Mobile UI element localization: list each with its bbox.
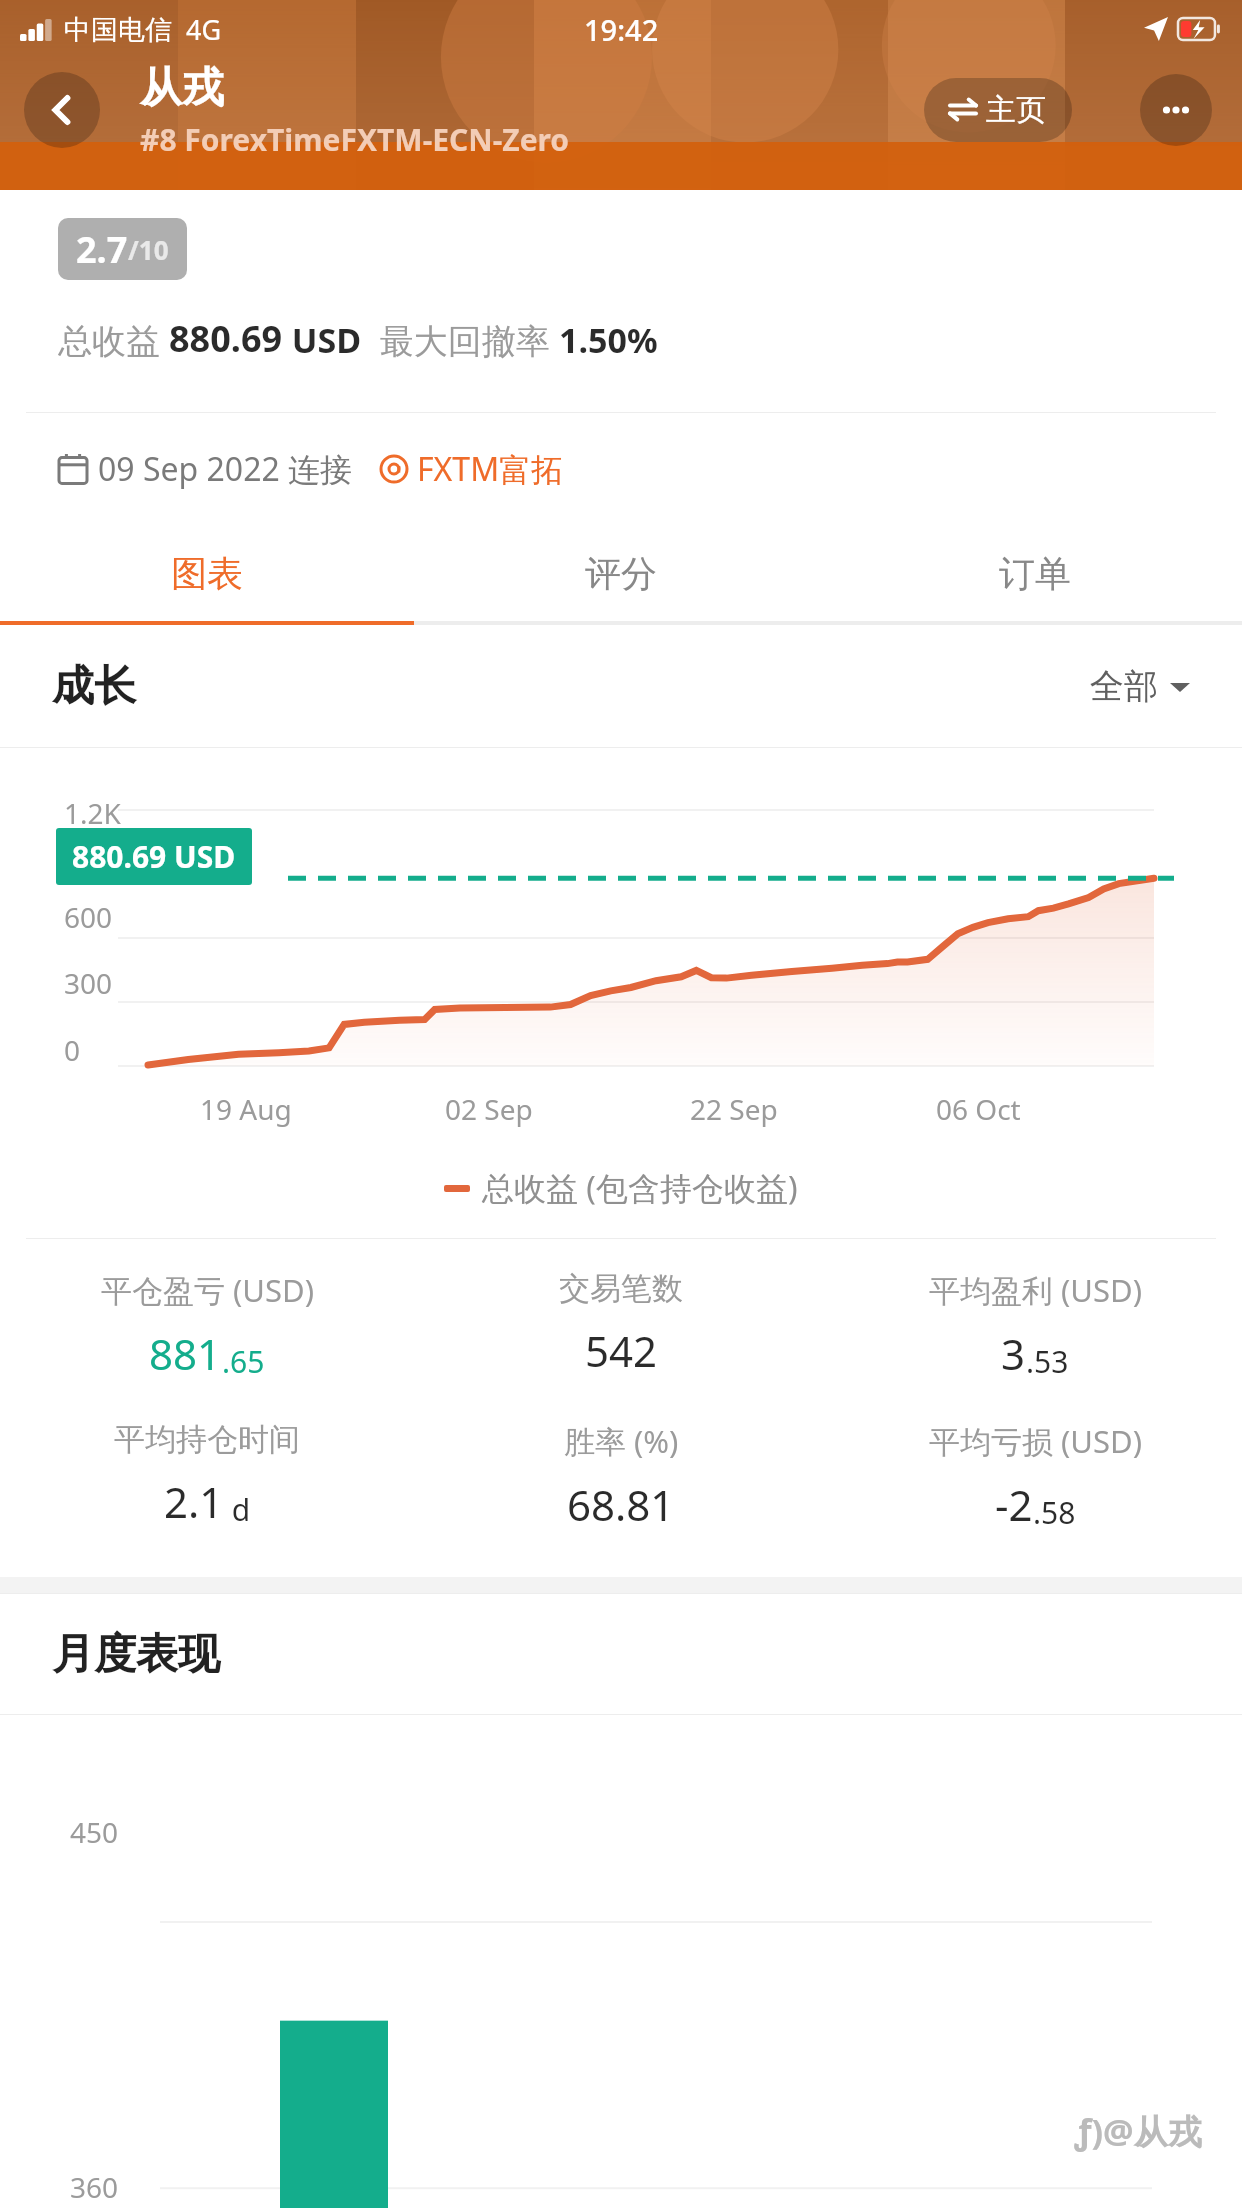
staticText: 300	[64, 964, 113, 1002]
staticText: 订单	[999, 551, 1071, 596]
button[interactable]: Back	[24, 72, 100, 148]
staticText: 360	[70, 2168, 119, 2206]
staticText: 02 Sep	[445, 1090, 690, 1128]
staticText: USD	[283, 317, 362, 363]
staticText: 542	[585, 1322, 658, 1379]
staticText: 图表	[171, 551, 243, 596]
staticText: 4G	[186, 11, 222, 48]
staticText: 总收益 (包含持仓收益)	[482, 1166, 798, 1210]
staticText: 总收益	[58, 317, 169, 363]
staticText: 全部	[1090, 665, 1158, 708]
staticText: 中国电信	[64, 13, 172, 47]
staticText: 平均亏损 (USD)	[929, 1420, 1142, 1462]
staticText: 2.7	[76, 225, 128, 274]
button[interactable]: 平仓盈亏 (USD)	[0, 1269, 414, 1382]
button[interactable]: More options	[1140, 74, 1212, 146]
staticText: 881	[149, 1325, 222, 1382]
staticText: 平仓盈亏 (USD)	[101, 1269, 314, 1311]
staticText: 880.69 USD	[72, 836, 236, 877]
button[interactable]: 胜率 (%)	[414, 1420, 828, 1533]
staticText: 主页	[986, 91, 1046, 129]
staticText: 19:42	[584, 10, 659, 49]
button[interactable]: 订单	[828, 525, 1242, 621]
staticText: 评分	[585, 551, 657, 596]
staticText: #8 ForexTimeFXTM-ECN-Zero	[140, 119, 570, 160]
button[interactable]: FXTM富拓	[379, 447, 564, 491]
staticText: 最大回撤率	[362, 317, 559, 363]
staticText: ƒ)@从戎	[1074, 2108, 1202, 2154]
button[interactable]: 全部	[1090, 665, 1190, 708]
staticText: d	[224, 1489, 251, 1530]
staticText: 从戎	[140, 62, 224, 115]
staticText: 600	[64, 898, 113, 936]
button[interactable]: 交易笔数	[414, 1269, 828, 1379]
staticText: 交易笔数	[559, 1269, 683, 1308]
staticText: 0	[64, 1031, 81, 1069]
button[interactable]: 图表	[0, 525, 414, 621]
staticText: .65	[222, 1341, 265, 1382]
button[interactable]: 评分	[414, 525, 828, 621]
staticText: 22 Sep	[690, 1090, 936, 1128]
staticText: 19 Aug	[200, 1090, 445, 1128]
staticText: 平均持仓时间	[114, 1420, 300, 1459]
staticText: 06 Oct	[936, 1090, 1182, 1128]
staticText: 平均盈利 (USD)	[929, 1269, 1142, 1311]
staticText: .58	[1033, 1492, 1076, 1533]
staticText: 成长	[52, 660, 136, 713]
button[interactable]: 2.7	[58, 218, 187, 280]
staticText: 880.69	[169, 314, 283, 363]
staticText: 2.1	[164, 1473, 224, 1530]
button[interactable]: 主页	[924, 78, 1072, 142]
button[interactable]: 平均亏损 (USD)	[828, 1420, 1242, 1533]
staticText: 68.81	[567, 1476, 675, 1533]
staticText: -2	[995, 1476, 1033, 1533]
staticText: FXTM富拓	[417, 447, 564, 491]
staticText: 3	[1001, 1325, 1026, 1382]
staticText: 1.50%	[559, 317, 658, 363]
staticText: 月度表现	[52, 1628, 220, 1681]
button[interactable]: 平均盈利 (USD)	[828, 1269, 1242, 1382]
staticText: 450	[70, 1813, 119, 1851]
staticText: .53	[1026, 1341, 1069, 1382]
staticText: /10	[128, 232, 169, 267]
button[interactable]: 平均持仓时间	[0, 1420, 414, 1530]
staticText: 胜率 (%)	[564, 1420, 679, 1462]
staticText: 09 Sep 2022 连接	[98, 447, 353, 491]
staticText: 1.2K	[64, 794, 121, 832]
